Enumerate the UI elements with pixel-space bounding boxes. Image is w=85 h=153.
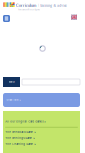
button[interactable]: Order form » — [3, 93, 80, 107]
staticText: Corriculum — [16, 2, 37, 8]
staticText: The Learning Game » — [5, 142, 36, 146]
staticText: The Feelings Game » — [5, 136, 35, 140]
staticText: Order form » — [6, 99, 20, 101]
button[interactable]: The Learning Game » — [5, 141, 78, 147]
staticText: Instructive and fun card games — [18, 9, 40, 11]
staticText: | — [38, 3, 39, 8]
button[interactable]: Language: English — [71, 15, 77, 19]
button[interactable]: The Feedback Game » — [5, 129, 78, 135]
button[interactable]: Card game catalogue — [3, 15, 10, 22]
staticText: Search — [8, 81, 14, 83]
button[interactable]: The Feelings Game » — [5, 135, 78, 141]
staticText: The Feedback Game » — [5, 130, 36, 134]
staticText: training & advice — [40, 3, 67, 8]
staticText: All our English Card Games » — [5, 120, 46, 123]
button[interactable]: Search — [3, 77, 20, 87]
button[interactable]: All our English Card Games » — [5, 119, 78, 125]
